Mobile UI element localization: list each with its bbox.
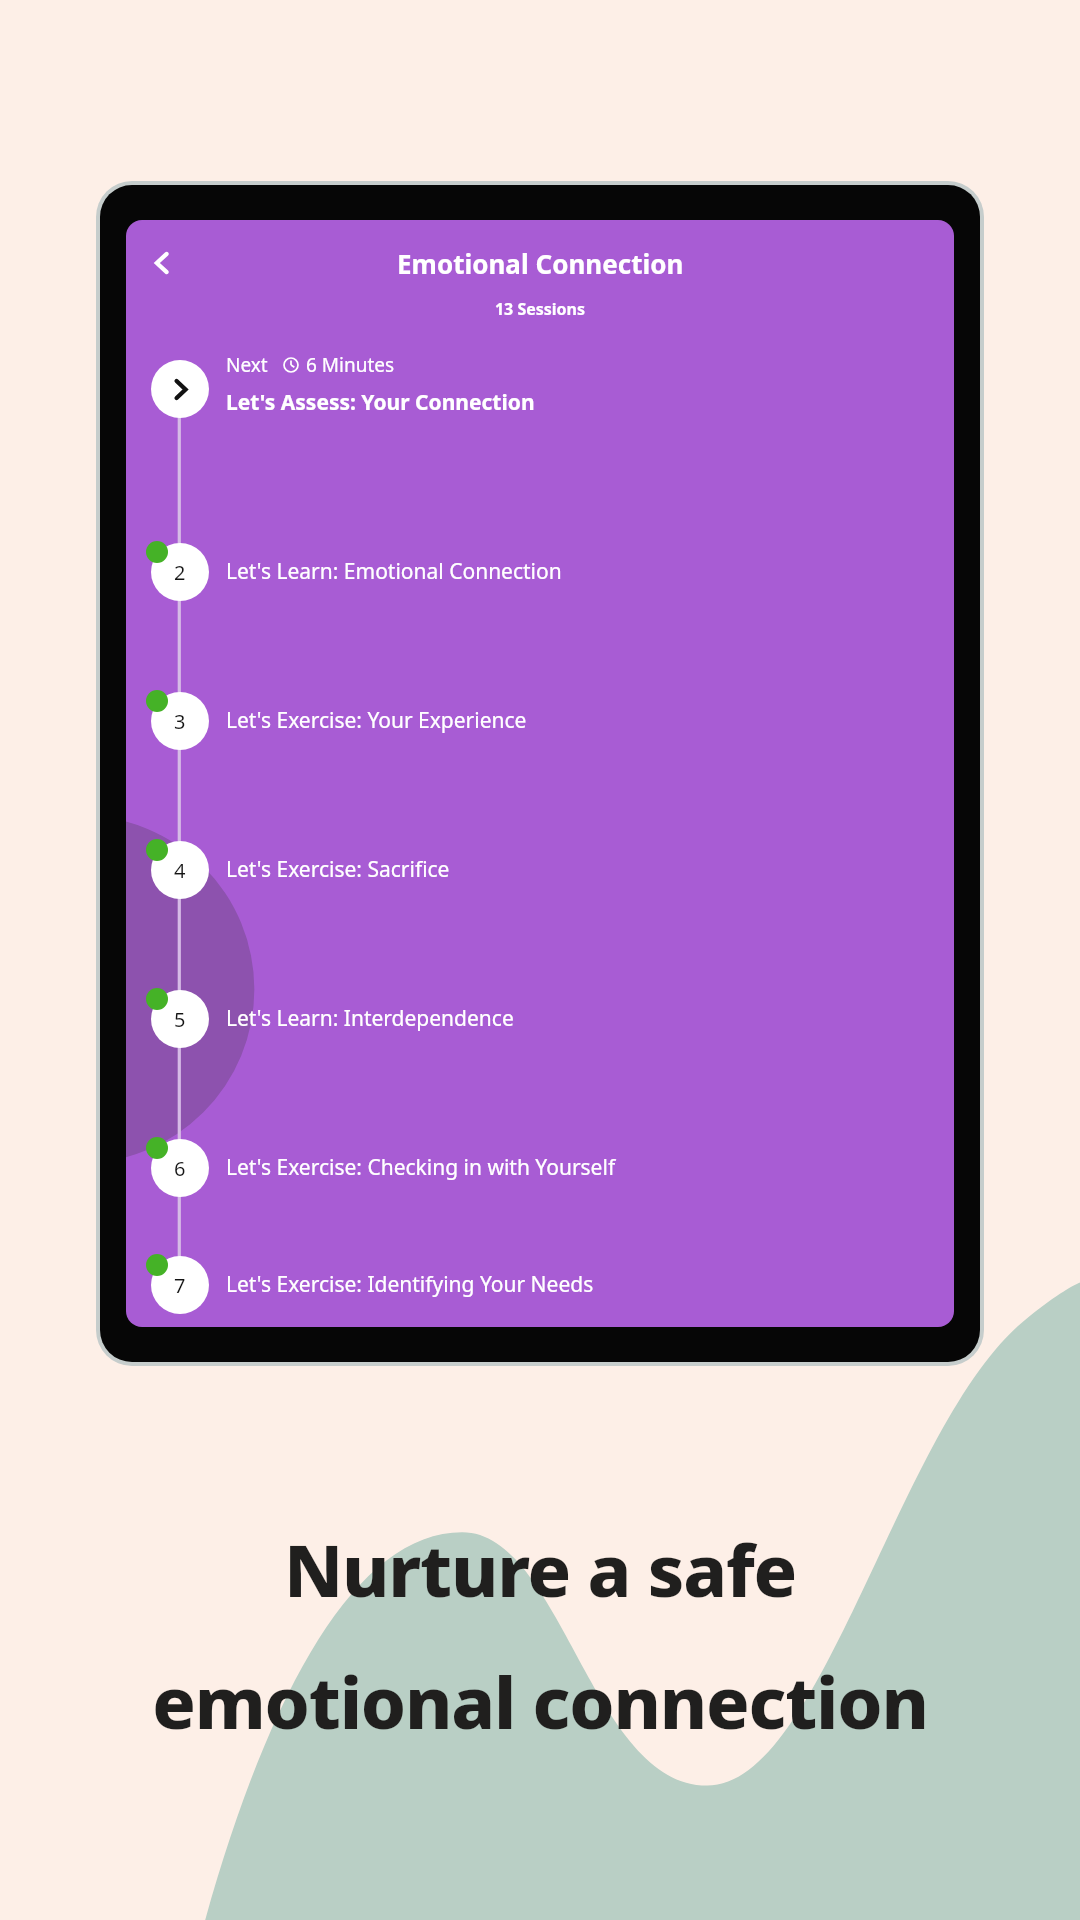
staticText: Emotional Connection [397, 246, 684, 281]
staticText: Next [226, 352, 268, 378]
staticText: Let's Exercise: Sacrifice [226, 855, 450, 884]
staticText: Nurture a safe [284, 1520, 796, 1618]
staticText: 7 [174, 1272, 186, 1299]
staticText: Let's Assess: Your Connection [226, 388, 535, 417]
staticText: 6 Minutes [306, 352, 395, 378]
staticText: emotional connection [152, 1652, 928, 1750]
staticText: Let's Learn: Emotional Connection [226, 557, 562, 586]
button[interactable]: Next [126, 348, 954, 497]
button[interactable]: 4 [126, 795, 954, 944]
staticText: 2 [174, 559, 186, 586]
staticText: 13 Sessions [126, 298, 954, 320]
button[interactable]: 6 [126, 1093, 954, 1242]
button[interactable]: 5 [126, 944, 954, 1093]
button[interactable]: 2 [126, 497, 954, 646]
staticText: Let's Exercise: Your Experience [226, 706, 527, 735]
staticText: Let's Exercise: Checking in with Yoursel… [226, 1153, 616, 1182]
staticText: 3 [174, 708, 186, 735]
button[interactable]: Back [138, 239, 186, 287]
staticText: 4 [174, 857, 186, 884]
staticText: 5 [174, 1006, 186, 1033]
button[interactable]: 3 [126, 646, 954, 795]
staticText: Let's Learn: Interdependence [226, 1004, 514, 1033]
button[interactable]: 7 [126, 1242, 954, 1327]
staticText: 6 [174, 1155, 186, 1182]
staticText: Let's Exercise: Identifying Your Needs [226, 1270, 594, 1299]
